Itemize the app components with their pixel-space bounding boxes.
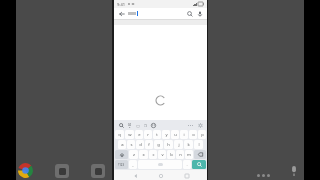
button[interactable]: u: [171, 130, 179, 139]
button[interactable]: GIF: [125, 121, 133, 129]
staticText: .: [186, 162, 188, 168]
staticText: z: [133, 152, 135, 158]
staticText: k: [187, 142, 190, 148]
button[interactable]: b: [167, 150, 175, 159]
staticText: GIF: [127, 123, 132, 128]
staticText: e: [138, 132, 141, 138]
button[interactable]: q: [115, 130, 124, 139]
button[interactable]: Stickers: [133, 121, 141, 129]
button[interactable]: k: [184, 140, 193, 149]
button[interactable]: o: [189, 130, 197, 139]
button[interactable]: Shift: [115, 150, 128, 159]
button[interactable]: d: [136, 140, 144, 149]
button[interactable]: ,: [129, 160, 137, 169]
staticText: a: [121, 142, 124, 148]
button[interactable]: g: [154, 140, 163, 149]
staticText: w: [128, 132, 132, 138]
button[interactable]: Clipboard: [141, 121, 149, 129]
staticText: u: [174, 132, 177, 138]
button[interactable]: .: [183, 160, 191, 169]
button[interactable]: Search: [117, 121, 125, 129]
button[interactable]: y: [162, 130, 170, 139]
staticText: t: [156, 132, 158, 138]
button[interactable]: Backspace: [194, 150, 206, 159]
button[interactable]: m: [185, 150, 193, 159]
staticText: ❐: [144, 124, 147, 128]
staticText: 9:41: [117, 2, 125, 7]
button[interactable]: More: [186, 121, 194, 129]
staticText: s: [130, 142, 133, 148]
staticText: v: [161, 152, 164, 158]
button[interactable]: e: [135, 130, 143, 139]
staticText: i: [183, 132, 185, 138]
staticText: r: [147, 132, 149, 138]
staticText: l: [198, 142, 200, 148]
button[interactable]: Back: [131, 171, 140, 180]
staticText: q: [118, 132, 121, 138]
button[interactable]: Emoji: [149, 121, 157, 129]
staticText: f: [148, 142, 150, 148]
staticText: n: [179, 152, 182, 158]
staticText: ,: [132, 162, 134, 168]
button[interactable]: Search: [192, 160, 206, 169]
button[interactable]: Symbols: [115, 160, 128, 169]
button[interactable]: Recents: [182, 171, 191, 180]
staticText: y: [165, 132, 168, 138]
button[interactable]: t: [153, 130, 161, 139]
button[interactable]: j: [174, 140, 183, 149]
staticText: o: [192, 132, 195, 138]
staticText: p: [201, 132, 204, 138]
button[interactable]: c: [149, 150, 157, 159]
staticText: b: [170, 152, 173, 158]
staticText: c: [152, 152, 155, 158]
staticText: j: [178, 142, 180, 148]
button[interactable]: a: [118, 140, 126, 149]
button[interactable]: Search: [185, 9, 194, 18]
button[interactable]: Space: [138, 160, 182, 169]
button[interactable]: s: [127, 140, 135, 149]
button[interactable]: Back: [117, 9, 126, 18]
button[interactable]: Home: [156, 171, 165, 180]
staticText: m: [187, 152, 191, 158]
button[interactable]: x: [139, 150, 148, 159]
staticText: □: [136, 124, 140, 128]
staticText: d: [139, 142, 142, 148]
button[interactable]: Settings: [196, 121, 204, 129]
button[interactable]: i: [180, 130, 188, 139]
button[interactable]: h: [164, 140, 173, 149]
button[interactable]: n: [176, 150, 184, 159]
button[interactable]: f: [145, 140, 153, 149]
button[interactable]: [128, 10, 185, 17]
button[interactable]: r: [144, 130, 152, 139]
button[interactable]: p: [198, 130, 206, 139]
button[interactable]: l: [194, 140, 203, 149]
staticText: ?123: [118, 163, 125, 167]
button[interactable]: w: [125, 130, 134, 139]
button[interactable]: Voice search: [195, 9, 204, 18]
staticText: x: [142, 152, 145, 158]
staticText: g: [157, 142, 160, 148]
staticText: h: [167, 142, 170, 148]
button[interactable]: v: [158, 150, 166, 159]
button[interactable]: z: [129, 150, 138, 159]
